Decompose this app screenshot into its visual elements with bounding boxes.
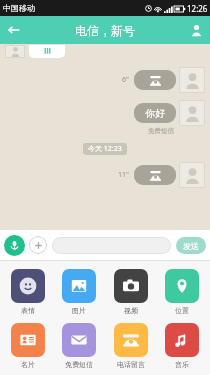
staticText: 音乐 <box>175 360 189 369</box>
button[interactable]: Add attachment <box>29 236 47 254</box>
button[interactable]: 图片 <box>56 269 102 315</box>
button[interactable] <box>52 237 171 254</box>
button[interactable]: Voice message <box>4 235 25 256</box>
staticText: 6" <box>122 75 129 85</box>
staticText: 名片 <box>21 360 35 369</box>
staticText: 今天 12:23 <box>88 144 122 154</box>
staticText: 位置 <box>175 306 189 315</box>
staticText: 免费短信 <box>148 127 174 135</box>
staticText: 你好 <box>145 107 165 120</box>
button[interactable]: 名片 <box>5 323 51 369</box>
staticText: 电信，新号 <box>75 23 135 38</box>
button[interactable]: 表情 <box>5 269 51 315</box>
button[interactable]: Contact <box>182 16 210 44</box>
button[interactable]: 你好 <box>134 103 176 123</box>
button[interactable] <box>134 70 176 90</box>
button[interactable]: 发送 <box>176 237 206 254</box>
staticText: 中国移动 <box>3 3 35 13</box>
button[interactable]: 视频 <box>108 269 154 315</box>
button[interactable] <box>134 165 176 185</box>
staticText: 发送 <box>183 241 199 251</box>
staticText: 电话留言 <box>117 360 145 369</box>
staticText: 表情 <box>21 306 35 315</box>
staticText: 图片 <box>72 306 86 315</box>
staticText: 视频 <box>124 306 138 315</box>
button[interactable]: 电话留言 <box>108 323 154 369</box>
button[interactable]: 位置 <box>159 269 205 315</box>
staticText: 免费短信 <box>65 360 93 369</box>
button[interactable]: 音乐 <box>159 323 205 369</box>
button[interactable]: Back <box>0 16 28 44</box>
staticText: 11" <box>118 170 129 180</box>
staticText: 12:26 <box>187 3 208 14</box>
button[interactable]: 免费短信 <box>56 323 102 369</box>
